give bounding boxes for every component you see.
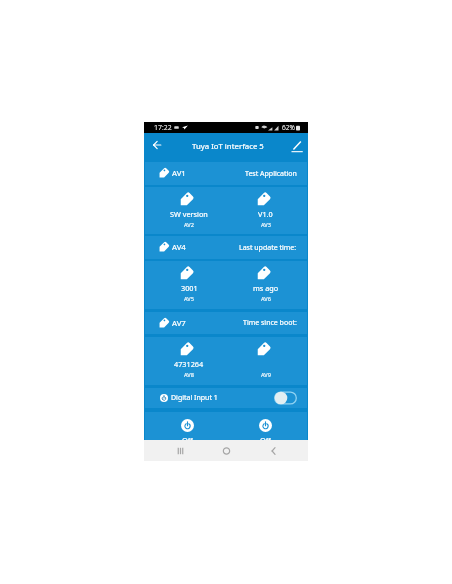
staticText: AV3 — [261, 221, 271, 229]
staticText: 62% — [282, 123, 295, 132]
staticText: AV6 — [261, 295, 271, 303]
button[interactable]: Digital Input 1 — [145, 388, 307, 408]
button[interactable]: Back — [146, 133, 167, 156]
staticText: AV7 — [172, 318, 186, 329]
staticText: Time since boot: — [243, 318, 297, 328]
button[interactable]: Home — [220, 440, 232, 461]
button[interactable]: 4731264 — [151, 337, 227, 385]
button[interactable]: 3001 — [151, 261, 227, 309]
staticText: V1.0 — [258, 209, 273, 219]
staticText: Digital Input 1 — [171, 393, 218, 403]
button[interactable]: AV4 — [145, 236, 307, 259]
staticText: AV1 — [172, 168, 186, 179]
staticText: Last update time: — [239, 243, 297, 253]
button[interactable]: Digital Input 1 toggle — [274, 391, 297, 405]
staticText: 4731264 — [174, 359, 204, 369]
staticText: Off — [260, 435, 271, 444]
staticText: AV8 — [184, 371, 194, 379]
button[interactable]: SW version — [151, 187, 227, 234]
button[interactable]: V1.0 — [227, 187, 304, 234]
button[interactable]: Recents — [174, 440, 186, 461]
staticText: 3001 — [181, 283, 198, 293]
button[interactable]: AV7 — [145, 312, 307, 334]
staticText: AV9 — [261, 371, 271, 379]
button[interactable]: AV9 — [227, 337, 304, 385]
staticText: SW version — [170, 209, 208, 219]
staticText: Test Application — [245, 169, 297, 179]
button[interactable]: Off — [149, 412, 226, 444]
staticText: AV2 — [184, 221, 194, 229]
staticText: 17:22 — [154, 123, 172, 133]
staticText: Off — [182, 435, 193, 444]
button[interactable]: AV1 — [145, 162, 307, 185]
staticText: AV4 — [172, 242, 186, 253]
button[interactable]: Back — [267, 440, 279, 461]
button[interactable]: Off — [226, 412, 304, 444]
staticText: Tuya IoT interface 5 — [192, 141, 264, 152]
staticText: AV5 — [184, 295, 194, 303]
staticText: ms ago — [253, 283, 279, 293]
button[interactable]: Edit — [286, 135, 308, 158]
button[interactable]: ms ago — [227, 261, 304, 309]
